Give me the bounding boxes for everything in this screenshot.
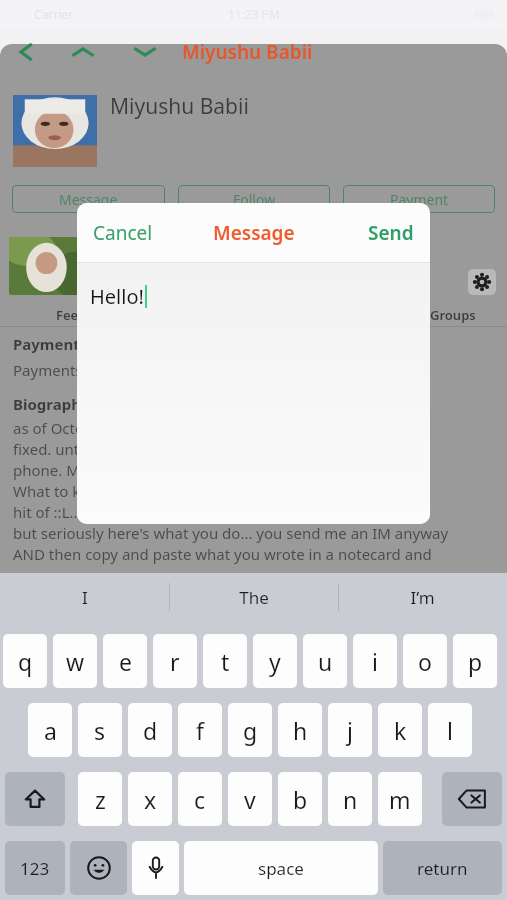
button[interactable]: x [128,772,172,826]
button[interactable]: g [228,703,272,757]
staticText: Message [59,190,118,209]
button[interactable]: space [184,841,378,895]
button[interactable]: Settings [468,269,496,295]
staticText: Miyushu Babii [182,39,313,65]
staticText: Follow [233,190,276,209]
staticText: I [82,586,88,609]
button[interactable]: Hello! [77,263,430,524]
staticText: c [194,784,206,815]
staticText: Groups [430,306,476,324]
button[interactable]: q [3,634,47,688]
button[interactable]: 123 [5,841,65,895]
staticText: e [119,646,132,677]
button[interactable]: Emoji [70,841,127,895]
staticText: m [389,784,411,815]
button[interactable]: r [153,634,197,688]
button[interactable]: Backspace [442,772,502,826]
button[interactable]: Send [368,220,414,246]
staticText: r [170,646,180,677]
button[interactable]: Shift [5,772,65,826]
staticText: n [343,784,358,815]
staticText: w [66,646,85,677]
button[interactable]: Message [12,185,165,213]
button[interactable]: h [278,703,322,757]
staticText: Hello! [90,283,144,310]
staticText: k [394,715,407,746]
button[interactable]: l [428,703,472,757]
button[interactable]: Payment [343,185,495,213]
staticText: j [347,715,353,746]
staticText: space [258,857,304,880]
staticText: Payments [13,334,88,354]
staticText: return [417,857,468,880]
staticText: 123 [20,857,50,880]
button[interactable]: w [53,634,97,688]
button[interactable]: Dictation [132,841,179,895]
staticText: Payments not enabled [13,360,171,380]
staticText: b [293,784,308,815]
staticText: u [318,646,333,677]
button[interactable]: f [178,703,222,757]
button[interactable]: d [128,703,172,757]
button[interactable]: b [278,772,322,826]
button[interactable]: n [328,772,372,826]
button[interactable]: a [28,703,72,757]
staticText: h [293,715,308,746]
button[interactable]: j [328,703,372,757]
button[interactable]: p [453,634,497,688]
button[interactable]: i [353,634,397,688]
button[interactable]: t [203,634,247,688]
staticText: x [144,784,157,815]
staticText: p [468,646,483,677]
button[interactable]: Follow [178,185,330,213]
staticText: The [239,586,269,609]
staticText: as of October my computer is broken and … [13,418,449,565]
button[interactable]: Cancel [93,220,153,246]
staticText: l [447,715,453,746]
button[interactable]: return [383,841,502,895]
button[interactable]: The [169,573,338,621]
button[interactable]: o [403,634,447,688]
staticText: I’m [410,586,435,609]
staticText: v [244,784,256,815]
staticText: y [269,646,281,677]
staticText: Carrier [34,6,74,22]
staticText: g [243,715,258,746]
button[interactable]: k [378,703,422,757]
button[interactable]: I [0,573,169,621]
staticText: Miyushu Babii [110,92,249,121]
staticText: 11:23 PM [228,6,280,22]
staticText: Message [213,220,295,246]
staticText: Send [368,220,414,246]
staticText: Biography [13,394,90,414]
button[interactable]: c [178,772,222,826]
staticText: d [143,715,158,746]
staticText: o [418,646,432,677]
staticText: q [18,646,33,677]
staticText: z [95,784,106,815]
staticText: a [44,715,57,746]
staticText: t [221,646,230,677]
staticText: Cancel [93,220,153,246]
staticText: s [94,715,106,746]
button[interactable]: Next [114,34,176,70]
button[interactable]: u [303,634,347,688]
button[interactable]: Previous [52,34,114,70]
button[interactable]: s [78,703,122,757]
staticText: f [196,715,204,746]
button[interactable]: y [253,634,297,688]
staticText: i [372,646,378,677]
button[interactable]: z [78,772,122,826]
staticText: Feed [56,306,87,324]
button[interactable]: Back [0,34,52,70]
staticText: Payment [390,190,449,209]
button[interactable]: m [378,772,422,826]
button[interactable]: e [103,634,147,688]
button[interactable]: I’m [338,573,507,621]
button[interactable]: v [228,772,272,826]
